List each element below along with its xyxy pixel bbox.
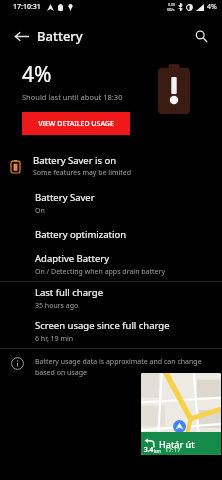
staticText: Last full charge bbox=[35, 286, 104, 299]
button[interactable]: Screen usage since full charge bbox=[0, 315, 222, 348]
staticText: Adaptive Battery bbox=[35, 252, 110, 265]
button[interactable]: Last full charge bbox=[0, 282, 222, 315]
button[interactable]: Battery Saver bbox=[0, 187, 222, 220]
staticText: Battery Saver bbox=[35, 191, 95, 204]
button[interactable]: Adaptive Battery bbox=[0, 248, 222, 281]
staticText: 3.4 bbox=[144, 445, 154, 454]
staticText: 4% bbox=[22, 60, 52, 89]
button[interactable]: Battery optimization bbox=[0, 220, 222, 248]
staticText: Screen usage since full charge bbox=[35, 319, 170, 332]
button[interactable]: Google Maps navigation bbox=[141, 373, 221, 455]
button[interactable]: VIEW DETAILED USAGE bbox=[22, 112, 130, 135]
staticText: 35 hours ago bbox=[35, 301, 79, 311]
staticText: VIEW DETAILED USAGE bbox=[38, 119, 114, 129]
staticText: Battery usage data is approximate and ca… bbox=[35, 357, 222, 377]
staticText: On bbox=[35, 206, 45, 216]
staticText: 17:10:31 bbox=[13, 2, 41, 12]
staticText: Határ út bbox=[159, 438, 195, 450]
staticText: 0.00 bbox=[168, 2, 175, 7]
staticText: km bbox=[154, 448, 161, 454]
staticText: Should last until about 18:30 bbox=[22, 92, 123, 102]
staticText: Battery Saver is on bbox=[33, 154, 117, 167]
staticText: 6 hr, 19 min bbox=[35, 334, 74, 344]
button[interactable]: Back bbox=[6, 21, 36, 51]
staticText: Battery bbox=[37, 27, 83, 45]
button[interactable]: Battery Saver is on bbox=[0, 149, 222, 183]
staticText: Some features may be limited bbox=[33, 168, 132, 178]
staticText: KB/s bbox=[167, 7, 175, 12]
staticText: On / Detecting when apps drain battery bbox=[35, 267, 165, 277]
staticText: 4% bbox=[207, 2, 217, 12]
staticText: Battery optimization bbox=[35, 228, 127, 241]
staticText: 17:17 bbox=[165, 446, 181, 454]
button[interactable]: Search bbox=[186, 21, 216, 51]
